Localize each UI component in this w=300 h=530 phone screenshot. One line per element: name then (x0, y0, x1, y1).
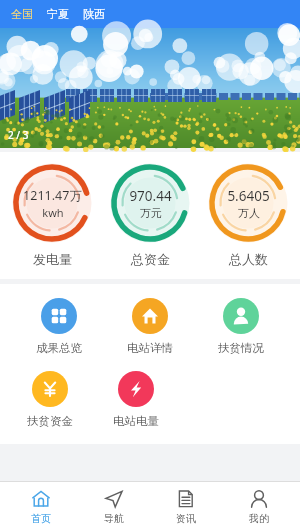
staticText: 扶贫资金 (27, 414, 73, 428)
button[interactable]: 电站详情 (118, 298, 182, 355)
staticText: 全国 (11, 7, 33, 21)
staticText: 我的 (249, 512, 269, 525)
staticText: 导航 (104, 512, 124, 525)
staticText: 扶贫情况 (218, 341, 264, 355)
button[interactable]: 扶贫资金 (18, 371, 82, 428)
staticText: 宁夏 (47, 7, 69, 21)
button[interactable]: 970.44 (104, 162, 196, 267)
staticText: 万元 (140, 206, 162, 220)
staticText: 资讯 (176, 512, 196, 525)
staticText: 万人 (238, 206, 260, 220)
button[interactable]: 导航 (83, 482, 145, 530)
button[interactable]: 我的 (228, 482, 290, 530)
staticText: 5.6405 (227, 187, 270, 205)
button[interactable]: 成果总览 (27, 298, 91, 355)
button[interactable]: Banner image (0, 28, 300, 148)
button[interactable]: 5.6405 (202, 162, 294, 267)
button[interactable]: 电站电量 (104, 371, 168, 428)
staticText: 电站电量 (113, 414, 159, 428)
staticText: 970.44 (129, 187, 172, 205)
staticText: kwh (42, 205, 64, 220)
staticText: 首页 (31, 512, 51, 525)
staticText: 1211.47万 (23, 187, 82, 204)
staticText: 总资金 (131, 251, 170, 267)
staticText: 发电量 (33, 251, 72, 267)
button[interactable]: 扶贫情况 (209, 298, 273, 355)
staticText: 成果总览 (36, 341, 82, 355)
button[interactable]: 资讯 (155, 482, 217, 530)
button[interactable]: 宁夏 (44, 5, 72, 23)
staticText: 陕西 (83, 7, 105, 21)
staticText: 电站详情 (127, 341, 173, 355)
button[interactable]: 首页 (10, 482, 72, 530)
button[interactable]: 陕西 (80, 5, 108, 23)
staticText: 总人数 (229, 251, 268, 267)
staticText: 2 / 3 (8, 128, 29, 142)
button[interactable]: 1211.47万 (6, 162, 98, 267)
button[interactable]: 全国 (8, 5, 36, 23)
